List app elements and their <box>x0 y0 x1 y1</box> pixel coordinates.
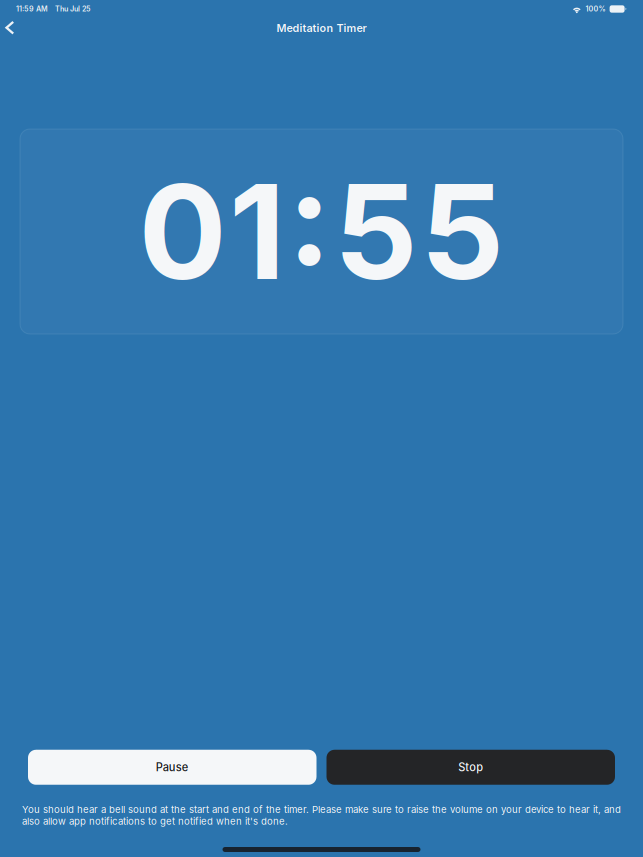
staticText: Pause <box>156 761 189 774</box>
staticText: 100% <box>586 5 606 13</box>
button[interactable]: Back <box>0 19 28 36</box>
staticText: 01:55 <box>138 152 504 310</box>
staticText: Meditation Timer <box>276 21 366 35</box>
button[interactable]: Stop <box>326 750 615 785</box>
staticText: Thu Jul 25 <box>55 5 91 13</box>
staticText: Stop <box>458 761 483 774</box>
staticText: You should hear a bell sound at the star… <box>22 804 621 827</box>
button[interactable]: Pause <box>28 750 316 785</box>
staticText: 11:59 AM <box>16 5 48 13</box>
